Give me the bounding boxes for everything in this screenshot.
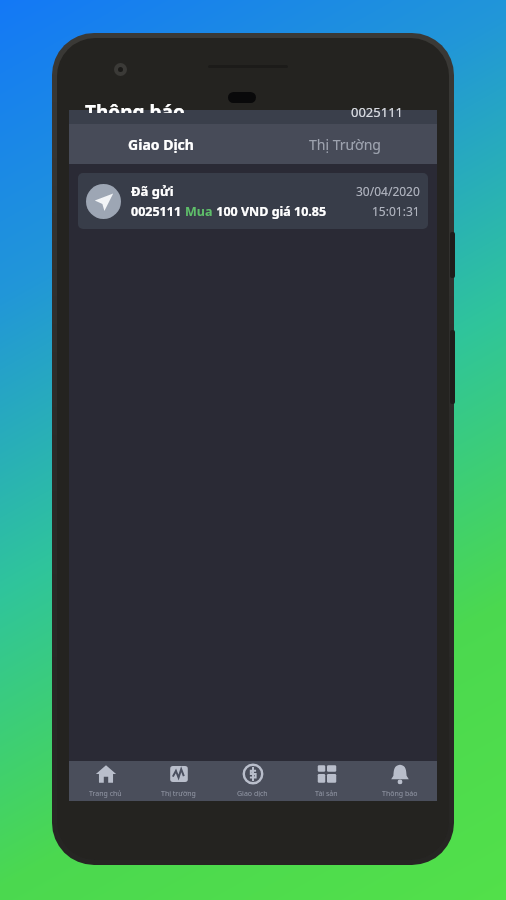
button[interactable]: Tài sản [289, 761, 363, 801]
staticText: 0025111 [351, 103, 404, 117]
staticText: Đã gửi [131, 182, 174, 200]
staticText: 15:01:31 [372, 203, 420, 219]
staticText: Trang chủ [89, 789, 122, 799]
button[interactable]: Trang chủ [69, 761, 142, 801]
button[interactable]: Giao dịch [215, 761, 289, 801]
other: Sent [86, 184, 121, 219]
button[interactable]: Thị trường [142, 761, 215, 801]
staticText: Thông báo [382, 789, 418, 799]
button[interactable]: Sent [78, 173, 428, 229]
staticText: 100 VND giá 10.85 [213, 203, 327, 220]
staticText: Thị trường [161, 789, 196, 799]
button[interactable]: Thị Trường [253, 124, 437, 164]
button[interactable]: Giao Dịch [69, 124, 253, 164]
staticText: Giao Dịch [128, 135, 194, 154]
staticText: 0025111 [131, 203, 185, 220]
button[interactable]: Thông báo [363, 761, 437, 801]
staticText: 30/04/2020 [356, 183, 420, 199]
staticText: Mua [185, 203, 213, 220]
staticText: Tài sản [315, 789, 338, 799]
staticText: Giao dịch [237, 789, 268, 799]
staticText: Thông báo [85, 99, 185, 113]
staticText: Thị Trường [309, 135, 381, 154]
